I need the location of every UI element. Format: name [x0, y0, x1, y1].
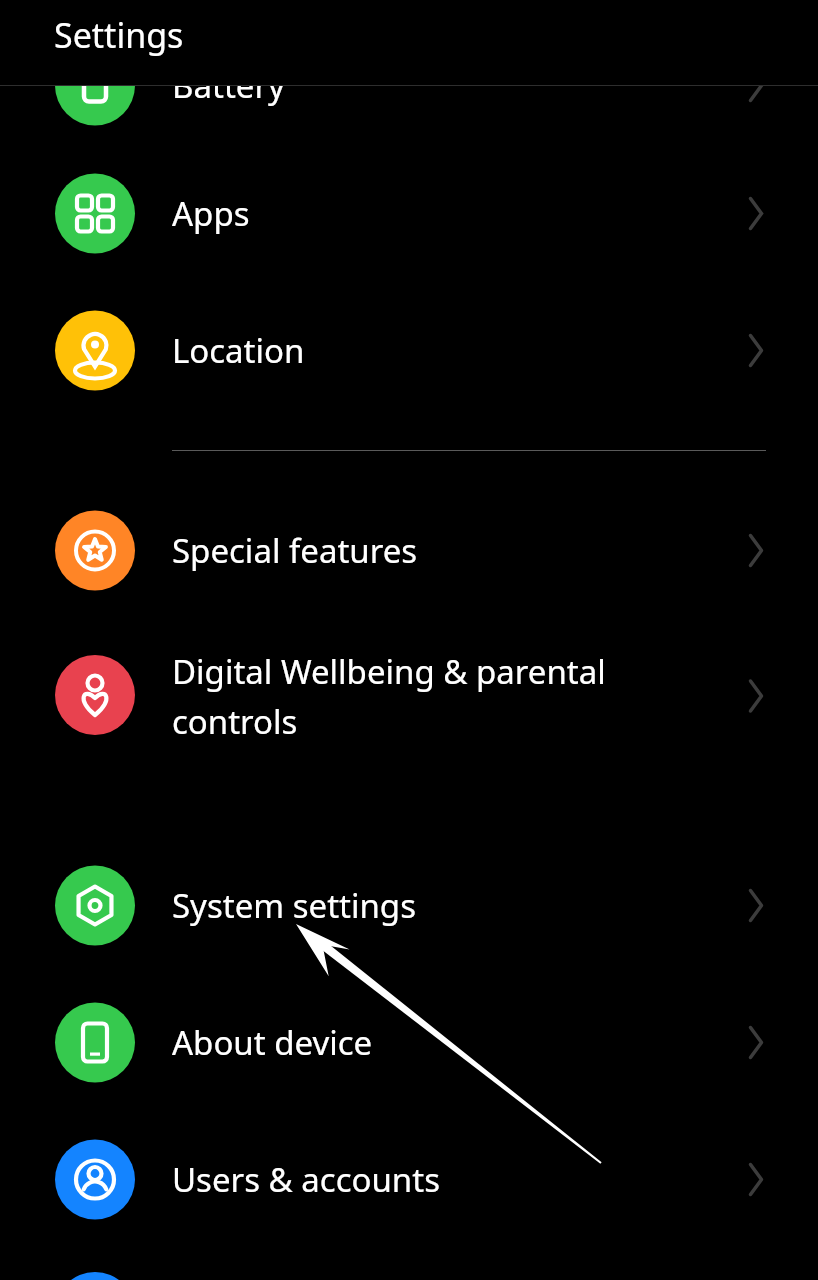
staticText: Digital Wellbeing & parental controls [172, 649, 606, 744]
staticText: Battery [172, 63, 285, 108]
button[interactable]: Digital Wellbeing and parental controls [0, 621, 818, 771]
button[interactable]: Location [0, 282, 818, 419]
button[interactable]: Apps [0, 145, 818, 282]
staticText: Apps [172, 191, 250, 236]
staticText: Special features [172, 528, 418, 573]
staticText: Location [172, 328, 305, 373]
staticText: Settings [54, 12, 184, 58]
staticText: About device [172, 1020, 373, 1065]
button[interactable]: System settings [0, 837, 818, 974]
staticText: System settings [172, 883, 416, 928]
button[interactable]: Users and accounts [0, 1111, 818, 1248]
button[interactable]: Special features [0, 482, 818, 619]
button[interactable]: Battery [0, 17, 818, 154]
staticText: Users & accounts [172, 1157, 440, 1202]
button[interactable]: About device [0, 974, 818, 1111]
